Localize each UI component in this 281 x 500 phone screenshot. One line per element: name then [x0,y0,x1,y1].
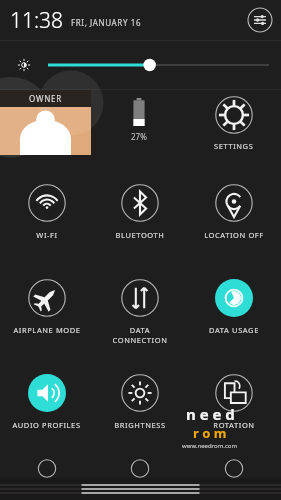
button[interactable]: LOCATION OFF [187,174,281,269]
button[interactable]: Quick settings menu [247,7,273,33]
staticText: ROTATION [213,420,255,430]
button[interactable]: WI-FI [0,174,93,269]
button[interactable]: ROTATION [187,364,281,459]
staticText: BLUETOOTH [115,230,165,240]
staticText: www.needrom.com [182,442,238,450]
staticText: SETTINGS [214,141,254,151]
staticText: AIRPLANE MODE [13,325,81,335]
staticText: AUDIO PROFILES [12,420,81,430]
button[interactable]: DATA CONNECTION [93,269,187,364]
staticText: WI-FI [36,230,58,240]
button[interactable] [0,41,281,89]
staticText: DATA USAGE [209,325,259,335]
staticText: r o m [193,424,227,442]
button[interactable]: 27% [130,98,148,142]
button[interactable]: OWNER [0,90,91,172]
staticText: LOCATION OFF [204,230,264,240]
staticText: 11:38 [10,6,64,35]
button[interactable]: DATA USAGE [187,269,281,364]
staticText: n e e d [186,404,235,424]
button[interactable]: Close quick settings [0,478,281,500]
staticText: FRI, JANUARY 16 [71,17,142,28]
button[interactable]: AIRPLANE MODE [0,269,93,364]
button[interactable]: BRIGHTNESS [93,364,187,459]
button[interactable]: SETTINGS [214,96,254,151]
button[interactable]: BLUETOOTH [93,174,187,269]
button[interactable] [187,459,281,478]
button[interactable]: AUDIO PROFILES [0,364,93,459]
staticText: 27% [131,131,147,142]
button[interactable] [93,459,187,478]
staticText: BRIGHTNESS [114,420,166,430]
button[interactable] [0,459,93,478]
staticText: OWNER [29,93,63,104]
staticText: DATA CONNECTION [112,325,168,345]
